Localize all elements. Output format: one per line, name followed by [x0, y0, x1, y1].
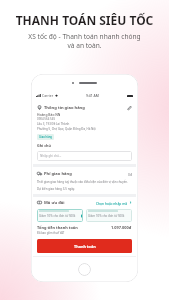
staticText: Ghi chú — [37, 143, 51, 148]
staticText: Carrier — [42, 93, 54, 98]
staticText: Lầu 3, 193 Đề Lai Thành — [37, 122, 70, 126]
button[interactable]: Giảm 10% cho đơn từ 500k — [86, 209, 132, 222]
button[interactable]: Mã ưu đãi — [37, 199, 132, 206]
staticText: Thời gian giao hàng tuỳ thuộc vào điều k… — [37, 180, 132, 191]
staticText: 9:41 AM — [86, 93, 99, 98]
staticText: Giao hàng — [39, 135, 52, 139]
button[interactable]: Thanh toán — [37, 239, 132, 253]
staticText: Nhập ghi chú... — [40, 154, 62, 158]
staticText: Tổng tiền thanh toán — [37, 225, 78, 230]
staticText: Thanh toán — [74, 244, 96, 249]
button[interactable]: Chỉnh sửa — [127, 105, 132, 110]
staticText: Phường 5, Chợ Gạo, Quận Đống Đa, Hà Nội — [37, 127, 96, 131]
staticText: 0đ — [128, 172, 132, 176]
staticText: THANH TOÁN SIÊU TỐC — [0, 12, 169, 28]
staticText: Chọn hoặc nhập mã — [96, 201, 128, 205]
staticText: Thông tin giao hàng — [44, 105, 85, 111]
button[interactable]: Giao hàng — [39, 135, 52, 139]
button[interactable]: Nhập ghi chú... — [40, 151, 129, 161]
button[interactable]: Thông tin giao hàng — [37, 104, 132, 111]
staticText: 1.097.000đ — [111, 225, 132, 230]
staticText: 0904 564 545 — [37, 117, 56, 121]
button[interactable]: Giảm 10% cho đơn từ 500k — [37, 209, 83, 222]
staticText: Hoàng Bảo NN — [37, 112, 61, 116]
staticText: XS tốc độ - Thanh toán nhanh chóng và an… — [20, 32, 149, 50]
staticText: Đã bao gồm thuế VAT — [37, 231, 65, 235]
staticText: Giảm 10% cho đơn từ 500k — [39, 214, 76, 218]
staticText: Phí giao hàng — [44, 171, 72, 177]
staticText: Mã ưu đãi — [44, 200, 65, 206]
staticText: Giảm 10% cho đơn từ 500k — [88, 214, 125, 218]
button[interactable]: Phí giao hàng — [37, 170, 132, 177]
